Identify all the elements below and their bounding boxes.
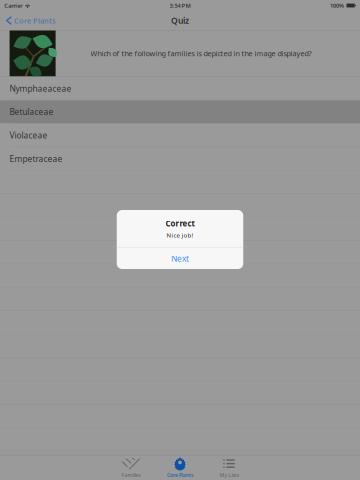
staticText: Families (121, 471, 140, 478)
button[interactable]: Violaceae (0, 124, 360, 147)
button[interactable]: Empetraceae (0, 147, 360, 170)
staticText: 100% (330, 2, 344, 9)
button[interactable]: Core Plants (0, 11, 62, 30)
button[interactable]: Next (117, 248, 243, 269)
button[interactable]: Betulaceae (0, 100, 360, 123)
button[interactable]: My Lists (204, 455, 253, 479)
button[interactable]: Nymphaeaceae (0, 77, 360, 100)
staticText: My Lists (219, 471, 238, 478)
button[interactable]: Core Plants (155, 455, 204, 479)
staticText: Violaceae (10, 130, 48, 141)
staticText: Carrier (4, 2, 22, 9)
button[interactable]: Families (106, 455, 155, 479)
staticText: Core Plants (167, 471, 193, 478)
staticText: Betulaceae (10, 106, 54, 117)
staticText: Nice job! (166, 231, 193, 239)
staticText: 3:54 PM (169, 2, 190, 9)
staticText: Core Plants (14, 15, 56, 25)
staticText: Next (171, 253, 189, 264)
staticText: Empetraceae (10, 153, 63, 164)
staticText: Quiz (171, 15, 189, 26)
staticText: Which of the following families is depic… (91, 49, 312, 58)
staticText: Correct (165, 218, 194, 229)
staticText: Nymphaeaceae (10, 83, 72, 94)
